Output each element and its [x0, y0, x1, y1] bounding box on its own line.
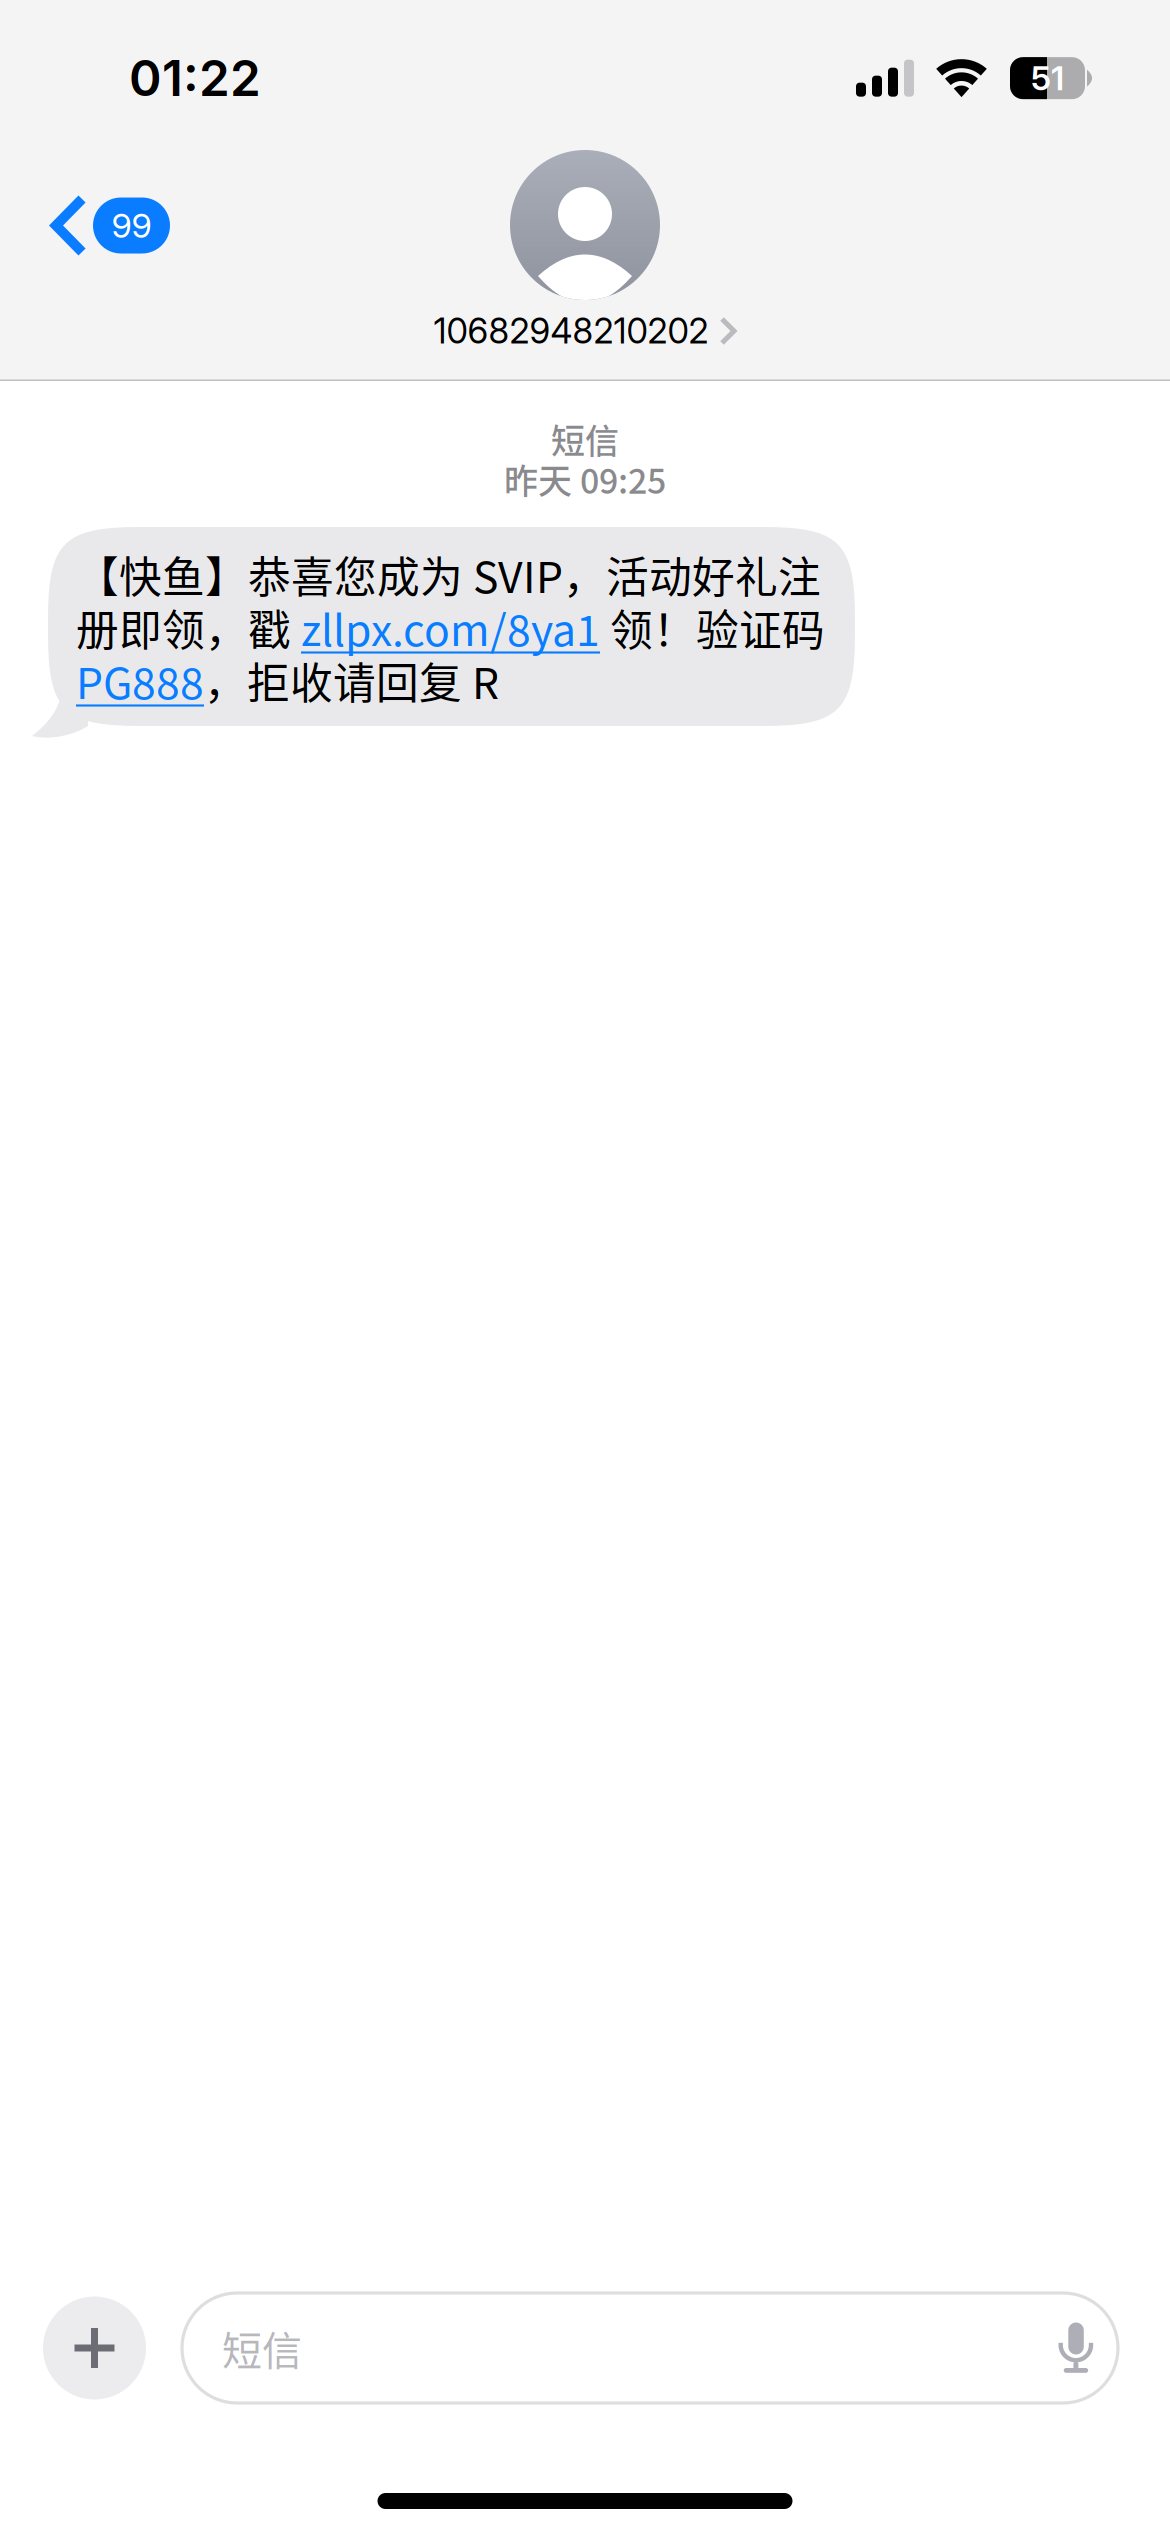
staticText: 10682948210202	[433, 310, 708, 352]
staticText: zllpx.com/8ya1	[301, 597, 600, 658]
button[interactable]: 10682948210202	[433, 307, 736, 355]
staticText: 01:22	[129, 48, 261, 108]
staticText: PG888	[76, 650, 204, 711]
staticText: 册即领，戳	[76, 597, 301, 658]
button[interactable]: Audio message	[1038, 2298, 1114, 2398]
staticText: 昨天 09:25	[504, 454, 666, 504]
staticText: 领！验证码	[600, 597, 825, 658]
button[interactable]: Add attachment	[43, 2296, 146, 2399]
staticText: 短信	[551, 414, 619, 464]
staticText: 短信	[222, 2319, 302, 2377]
button[interactable]: Back	[36, 178, 185, 273]
staticText: 99	[111, 205, 151, 246]
staticText: 51	[1031, 58, 1064, 98]
staticText: ，拒收请回复 R	[204, 650, 499, 711]
staticText: 【快鱼】恭喜您成为 SVIP，活动好礼注	[76, 544, 821, 605]
